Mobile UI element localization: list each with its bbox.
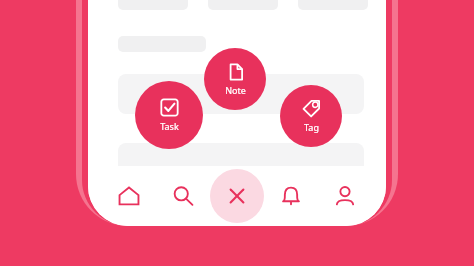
button[interactable]: Home (102, 169, 156, 223)
staticText: Task (160, 120, 179, 132)
button[interactable]: Notifications (264, 169, 318, 223)
button[interactable]: Close (210, 169, 264, 223)
button[interactable]: Profile (318, 169, 372, 223)
button[interactable]: Note (204, 48, 266, 110)
button[interactable]: Tag (280, 85, 342, 147)
button[interactable]: Task (135, 81, 203, 149)
staticText: Note (225, 84, 246, 96)
button[interactable]: Search (156, 169, 210, 223)
staticText: Tag (304, 121, 319, 133)
